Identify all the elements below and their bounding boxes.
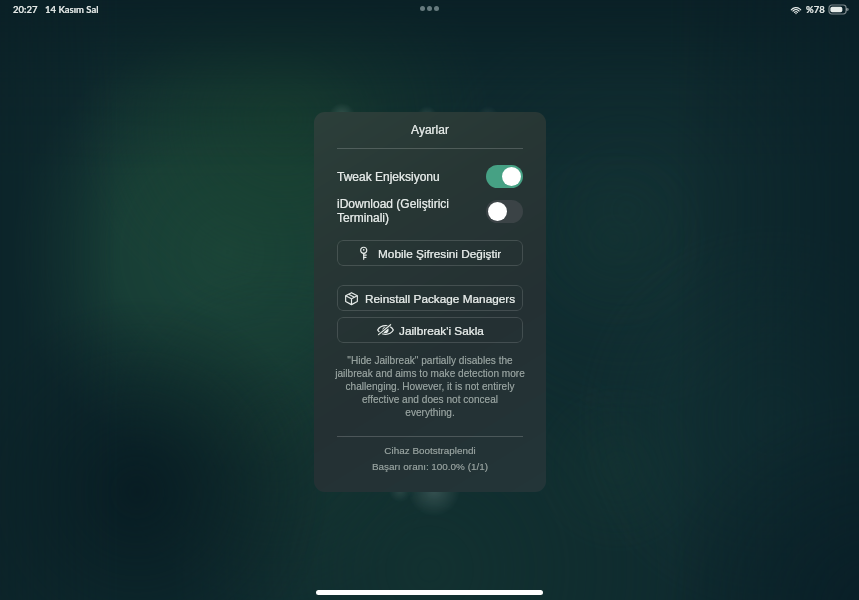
- staticText: Cihaz Bootstraplendi: [314, 445, 546, 456]
- staticText: 14 Kasım Sal: [45, 4, 99, 15]
- button[interactable]: Reinstall Package Managers: [337, 285, 523, 311]
- staticText: Tweak Enjeksiyonu: [337, 170, 486, 183]
- staticText: iDownload (Geliştirici Terminali): [337, 197, 486, 225]
- staticText: Başarı oranı: 100.0% (1/1): [314, 461, 546, 472]
- button[interactable]: iDownload (Geliştirici Terminali): [486, 200, 523, 223]
- staticText: Ayarlar: [314, 123, 546, 136]
- staticText: Reinstall Package Managers: [365, 292, 516, 305]
- button[interactable]: Tweak Enjeksiyonu: [337, 165, 523, 188]
- button[interactable]: Jailbreak'i Sakla: [337, 317, 523, 343]
- button[interactable]: Mobile Şifresini Değiştir: [337, 240, 523, 266]
- staticText: Jailbreak'i Sakla: [399, 324, 484, 337]
- button[interactable]: iDownload (Geliştirici Terminali): [337, 197, 523, 225]
- button[interactable]: Tweak Enjeksiyonu: [486, 165, 523, 188]
- other: Battery: [829, 5, 848, 14]
- staticText: "Hide Jailbreak" partially disables the …: [326, 355, 534, 419]
- staticText: %78: [806, 4, 825, 15]
- staticText: Mobile Şifresini Değiştir: [378, 247, 502, 260]
- other: Wi-Fi: [790, 4, 802, 16]
- staticText: 20:27: [13, 4, 38, 15]
